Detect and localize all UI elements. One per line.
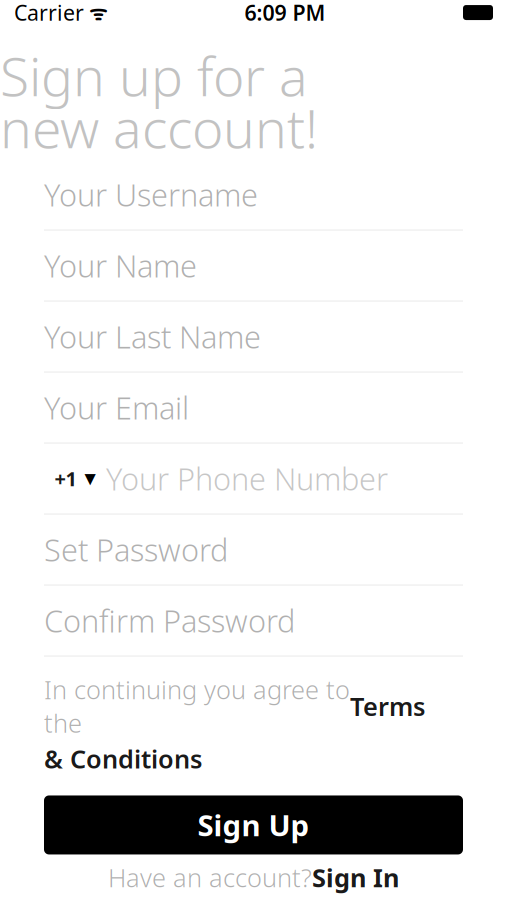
staticText: +1: [54, 465, 76, 492]
staticText: Your Username: [44, 174, 258, 215]
staticText: Sign Up: [197, 805, 309, 844]
staticText: Set Password: [44, 529, 228, 570]
staticText: Your Name: [44, 245, 197, 286]
staticText: & Conditions: [44, 742, 202, 775]
staticText: Have an account?: [108, 861, 312, 894]
staticText: ▼: [84, 470, 95, 487]
button[interactable]: Country code: [44, 443, 106, 513]
staticText: Sign up for a: [0, 40, 308, 111]
button[interactable]: Sign Up: [44, 795, 463, 854]
staticText: Terms: [350, 689, 425, 723]
staticText: new account!: [0, 92, 318, 163]
staticText: Carrier: [14, 0, 84, 27]
staticText: 6:09 PM: [244, 0, 325, 27]
staticText: Your Email: [44, 387, 189, 428]
staticText: ᯤ: [84, 0, 107, 26]
staticText: Your Last Name: [44, 316, 261, 357]
staticText: Your Phone Number: [106, 458, 388, 499]
staticText: Confirm Password: [44, 600, 295, 641]
staticText: In continuing you agree to the: [44, 672, 350, 740]
staticText: Sign In: [312, 861, 399, 894]
button[interactable]: Have an account?: [0, 860, 507, 894]
